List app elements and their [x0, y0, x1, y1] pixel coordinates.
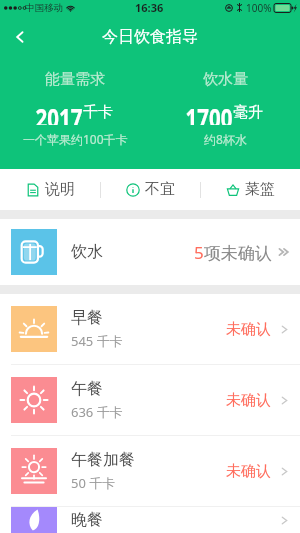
button[interactable]: 不宜 [101, 169, 200, 210]
staticText: 未确认 [226, 320, 271, 339]
staticText: 5项未确认 [194, 241, 272, 264]
staticText: 16:36 [135, 0, 164, 15]
staticText: 饮水 [71, 242, 103, 262]
staticText: 不宜 [145, 180, 175, 199]
staticText: 一个苹果约100千卡 [23, 131, 128, 147]
staticText: 午餐加餐 [71, 450, 135, 470]
staticText: 千卡 [83, 103, 113, 122]
staticText: 未确认 [226, 391, 271, 410]
staticText: 菜篮 [245, 180, 275, 199]
staticText: 早餐 [71, 308, 103, 328]
staticText: 545 千卡 [71, 332, 123, 350]
button[interactable]: 饮水 [0, 219, 300, 285]
staticText: 未确认 [226, 462, 271, 481]
staticText: 2017 [35, 99, 82, 125]
staticText: 午餐 [71, 379, 103, 399]
button[interactable]: 早餐 [0, 294, 300, 364]
staticText: 100% [246, 1, 272, 15]
button[interactable]: 晚餐 [0, 507, 300, 533]
button[interactable]: 返回 [0, 19, 40, 55]
staticText: 636 千卡 [71, 403, 123, 421]
button[interactable]: 说明 [0, 169, 100, 210]
staticText: 晚餐 [71, 510, 103, 530]
staticText: 今日饮食指导 [102, 27, 198, 47]
button[interactable]: 午餐 [0, 365, 300, 435]
staticText: 约8杯水 [204, 131, 247, 147]
staticText: 50 千卡 [71, 474, 116, 492]
staticText: 能量需求 [45, 70, 105, 89]
staticText: 毫升 [233, 103, 263, 122]
staticText: 饮水量 [203, 70, 248, 89]
staticText: 说明 [45, 180, 75, 199]
staticText: 1700 [185, 99, 232, 125]
staticText: 中国移动 [25, 2, 63, 14]
button[interactable]: 午餐加餐 [0, 436, 300, 506]
button[interactable]: 菜篮 [201, 169, 300, 210]
